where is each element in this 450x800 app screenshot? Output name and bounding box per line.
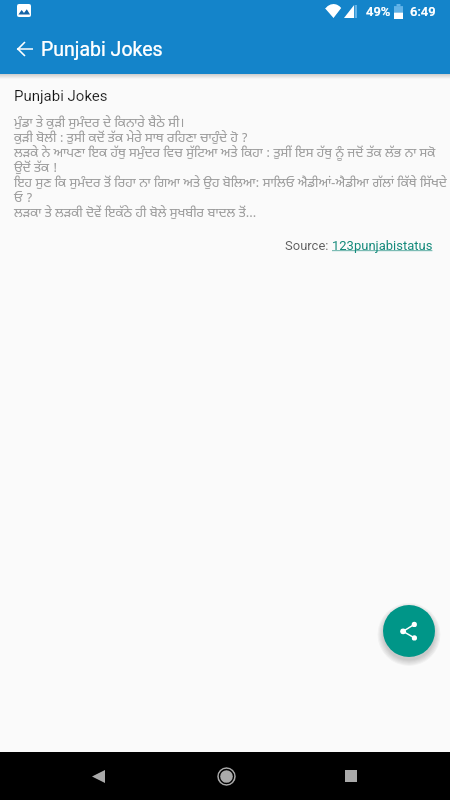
button[interactable]: 123punjabistatus — [332, 238, 433, 253]
button[interactable]: Recent apps — [327, 752, 375, 800]
staticText: Punjabi Jokes — [14, 87, 108, 105]
staticText: Punjabi Jokes — [41, 38, 163, 61]
button[interactable]: Navigate up — [5, 29, 45, 69]
button[interactable]: Share — [383, 605, 435, 657]
staticText: ਮੁੰਡਾ ਤੇ ਕੁੜੀ ਸੁਮੰਦਰ ਦੇ ਕਿਨਾਰੇ ਬੈਠੇ ਸੀ। … — [14, 115, 447, 222]
staticText: 49% — [366, 4, 391, 19]
button[interactable]: Back — [74, 752, 122, 800]
staticText: Source: — [285, 238, 332, 253]
button[interactable]: Home — [202, 752, 250, 800]
staticText: 6:49 — [410, 4, 436, 19]
